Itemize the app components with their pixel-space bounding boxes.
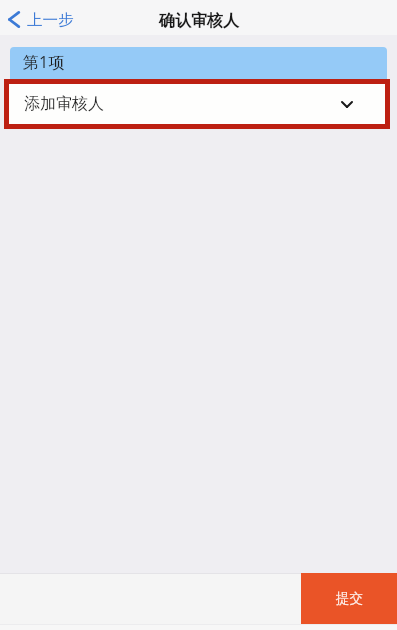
button[interactable]: 提交: [301, 573, 397, 624]
staticText: 第1项: [23, 51, 65, 73]
other: Expand: [341, 101, 353, 108]
staticText: 上一步: [27, 10, 74, 30]
staticText: 添加审核人: [24, 94, 104, 114]
button[interactable]: 添加审核人: [9, 84, 385, 124]
staticText: 提交: [336, 590, 363, 607]
button[interactable]: 上一步: [0, 5, 84, 35]
staticText: 确认审核人: [159, 11, 239, 31]
